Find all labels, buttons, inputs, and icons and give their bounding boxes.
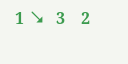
staticText: 1 [15, 7, 25, 29]
staticText: 3 [56, 7, 66, 29]
staticText: 2 [81, 7, 91, 29]
